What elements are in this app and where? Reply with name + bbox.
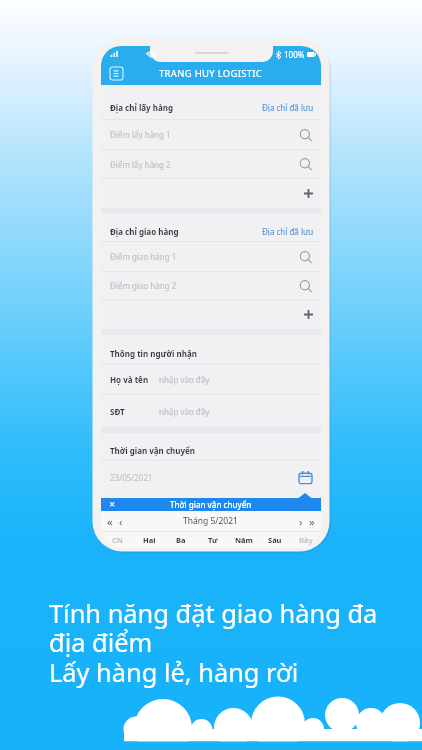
staticText: Thời gian vận chuyển xyxy=(110,445,195,456)
staticText: Điểm lấy hàng 2 xyxy=(110,159,171,170)
staticText: Tính năng đặt giao hàng đa địa điểm Lấy … xyxy=(49,596,378,690)
button[interactable]: Add address xyxy=(101,179,321,208)
button[interactable]: Thông tin người nhận xyxy=(101,335,321,364)
staticText: Thời gian vận chuyển xyxy=(170,499,252,510)
staticText: Địa chỉ đã lưu xyxy=(262,226,314,237)
staticText: ‹ xyxy=(119,514,123,529)
staticText: Địa chỉ lấy hàng xyxy=(110,102,173,113)
staticText: Ba xyxy=(176,535,186,545)
button[interactable]: Thời gian vận chuyển xyxy=(101,433,321,460)
staticText: Họ và tên xyxy=(110,374,149,385)
staticText: TRANG HUY LOGISTIC xyxy=(159,67,263,80)
button[interactable]: Menu xyxy=(110,67,123,80)
staticText: « xyxy=(107,514,113,529)
staticText: » xyxy=(309,514,315,529)
staticText: Hai xyxy=(143,535,156,545)
staticText: Sáu xyxy=(268,535,282,545)
staticText: 23/05/2021 xyxy=(110,472,153,483)
staticText: Điểm giao hàng 1 xyxy=(110,251,177,262)
staticText: › xyxy=(299,514,303,529)
staticText: 100% xyxy=(284,49,305,60)
staticText: SĐT xyxy=(110,406,125,417)
button[interactable]: Add address xyxy=(101,300,321,329)
button[interactable]: Điểm lấy hàng 1 xyxy=(101,120,321,149)
button[interactable]: Điểm lấy hàng 2 xyxy=(101,150,321,178)
staticText: Điểm giao hàng 2 xyxy=(110,280,177,291)
button[interactable]: ✕ xyxy=(101,498,321,511)
button[interactable]: 23/05/2021 xyxy=(101,461,321,493)
staticText: Địa chỉ giao hàng xyxy=(110,226,179,237)
staticText: Thông tin người nhận xyxy=(110,348,197,359)
button[interactable]: Địa chỉ lấy hàng xyxy=(101,87,321,119)
staticText: nhập vào đây xyxy=(159,374,210,385)
staticText: Tháng 5/2021 xyxy=(183,515,238,527)
staticText: Điểm lấy hàng 1 xyxy=(110,129,171,140)
button[interactable]: SĐT xyxy=(101,395,321,427)
staticText: CN xyxy=(112,535,123,545)
staticText: Bảy xyxy=(299,535,313,545)
button[interactable]: Điểm giao hàng 2 xyxy=(101,272,321,299)
staticText: Tư xyxy=(208,535,218,545)
button[interactable]: Điểm giao hàng 1 xyxy=(101,242,321,271)
staticText: nhập vào đây xyxy=(159,406,210,417)
staticText: ✕ xyxy=(109,500,116,509)
staticText: Năm xyxy=(235,535,253,545)
staticText: Địa chỉ đã lưu xyxy=(262,102,314,113)
button[interactable]: Địa chỉ giao hàng xyxy=(101,214,321,241)
button[interactable]: Họ và tên xyxy=(101,365,321,394)
